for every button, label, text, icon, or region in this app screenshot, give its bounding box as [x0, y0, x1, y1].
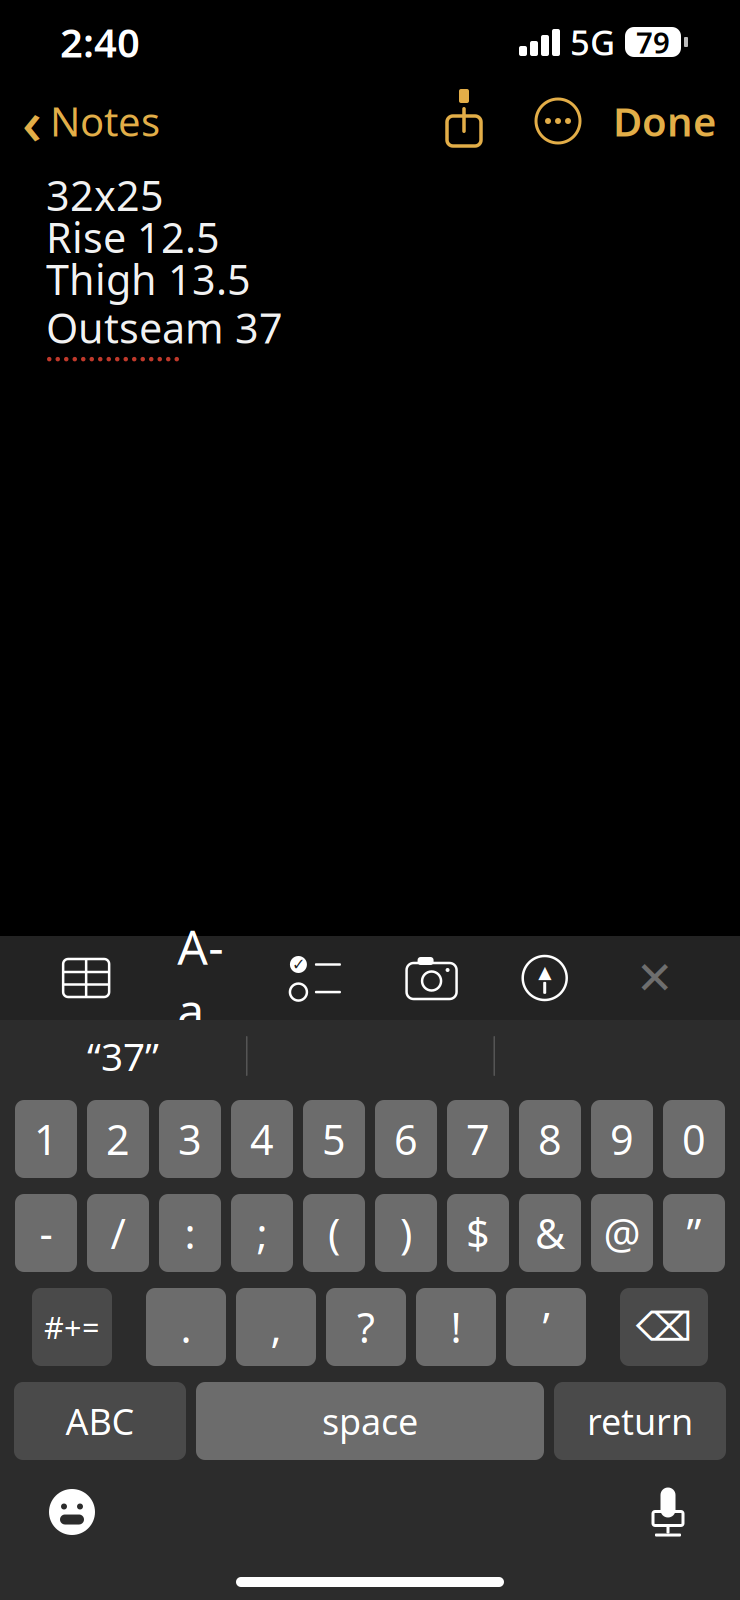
staticText: #+=: [44, 1307, 100, 1347]
button[interactable]: &: [519, 1194, 581, 1272]
staticText: “37”: [87, 1030, 159, 1082]
staticText: Thigh 13.5: [46, 252, 251, 306]
staticText: Aa: [177, 914, 223, 1042]
button[interactable]: :: [159, 1194, 221, 1272]
staticText: 2:40: [60, 15, 140, 68]
button[interactable]: @: [591, 1194, 653, 1272]
staticText: 6: [394, 1112, 418, 1166]
button[interactable]: 4: [231, 1100, 293, 1178]
button[interactable]: #+=: [32, 1288, 112, 1366]
button[interactable]: (: [303, 1194, 365, 1272]
staticText: $: [466, 1206, 490, 1260]
staticText: &: [535, 1206, 565, 1260]
staticText: ;: [256, 1206, 267, 1260]
staticText: ?: [357, 1300, 375, 1354]
staticText: ,: [270, 1300, 281, 1354]
staticText: .: [180, 1300, 191, 1354]
staticText: Done: [613, 94, 716, 147]
staticText: 5: [322, 1112, 346, 1166]
staticText: 5G: [570, 19, 615, 65]
button[interactable]: $: [447, 1194, 509, 1272]
staticText: ): [400, 1206, 412, 1260]
staticText: /: [110, 1206, 125, 1260]
button[interactable]: ‹: [0, 74, 160, 168]
staticText: 8: [538, 1112, 562, 1166]
button[interactable]: 0: [663, 1100, 725, 1178]
button[interactable]: ?: [326, 1288, 406, 1366]
staticText: ’: [542, 1300, 549, 1354]
staticText: ✓: [292, 955, 305, 974]
button[interactable]: !: [416, 1288, 496, 1366]
button[interactable]: Table: [59, 955, 113, 1001]
button[interactable]: Share: [439, 93, 489, 149]
staticText: 79: [636, 22, 670, 61]
button[interactable]: Camera: [403, 954, 461, 1002]
button[interactable]: Emoji: [30, 1477, 114, 1547]
button[interactable]: 1: [15, 1100, 77, 1178]
button[interactable]: More: [533, 96, 583, 146]
button[interactable]: Format: [172, 954, 228, 1002]
staticText: :: [184, 1206, 195, 1260]
button[interactable]: space: [196, 1382, 544, 1460]
button[interactable]: Done: [613, 88, 740, 153]
staticText: 9: [610, 1112, 634, 1166]
staticText: -: [39, 1206, 52, 1260]
button[interactable]: ’: [506, 1288, 586, 1366]
staticText: ‹: [22, 80, 42, 162]
staticText: (: [328, 1206, 340, 1260]
button[interactable]: Delete: [620, 1288, 708, 1366]
button[interactable]: ,: [236, 1288, 316, 1366]
button[interactable]: 9: [591, 1100, 653, 1178]
staticText: !: [450, 1300, 461, 1354]
button[interactable]: Markup: [520, 953, 570, 1003]
button[interactable]: 3: [159, 1100, 221, 1178]
staticText: ⌫: [635, 1304, 692, 1350]
button[interactable]: Dictation: [626, 1475, 710, 1549]
button[interactable]: -: [15, 1194, 77, 1272]
staticText: return: [587, 1397, 693, 1445]
button[interactable]: ;: [231, 1194, 293, 1272]
button[interactable]: “37”: [0, 1020, 246, 1092]
staticText: @: [603, 1206, 640, 1260]
button[interactable]: Checklist: [287, 954, 343, 1002]
staticText: Rise 12.5: [46, 210, 220, 264]
staticText: Notes: [50, 94, 160, 147]
staticText: 1: [34, 1112, 58, 1166]
staticText: 0: [682, 1112, 706, 1166]
button[interactable]: 8: [519, 1100, 581, 1178]
staticText: ▲: [538, 962, 551, 982]
staticText: 3: [178, 1112, 202, 1166]
staticText: ”: [686, 1206, 701, 1260]
button[interactable]: ): [375, 1194, 437, 1272]
button[interactable]: 6: [375, 1100, 437, 1178]
staticText: ABC: [65, 1397, 134, 1445]
staticText: space: [322, 1397, 418, 1445]
button[interactable]: 5: [303, 1100, 365, 1178]
button[interactable]: Close: [629, 954, 681, 1002]
button[interactable]: ABC: [14, 1382, 186, 1460]
staticText: ✕: [636, 952, 674, 1004]
button[interactable]: /: [87, 1194, 149, 1272]
staticText: Outseam 37: [46, 300, 283, 355]
button[interactable]: .: [146, 1288, 226, 1366]
staticText: 32x25: [46, 168, 164, 222]
staticText: 2: [106, 1112, 130, 1166]
button[interactable]: return: [554, 1382, 726, 1460]
staticText: 4: [250, 1112, 274, 1166]
staticText: 7: [466, 1112, 490, 1166]
button[interactable]: 2: [87, 1100, 149, 1178]
button[interactable]: 7: [447, 1100, 509, 1178]
button[interactable]: ”: [663, 1194, 725, 1272]
